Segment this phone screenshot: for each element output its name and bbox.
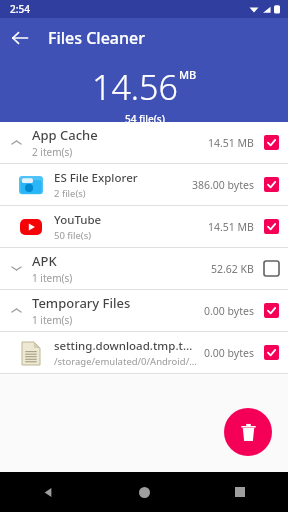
button[interactable]: APK	[0, 248, 288, 289]
staticText: YouTube	[54, 212, 102, 228]
button[interactable]: ES File Explorer	[0, 164, 288, 205]
staticText: MB	[179, 67, 197, 82]
staticText: 14.51 MB	[208, 136, 254, 150]
staticText: Temporary Files	[32, 294, 131, 312]
button[interactable]: Back	[0, 472, 96, 512]
button[interactable]: Back	[0, 18, 40, 58]
staticText: APK	[32, 252, 57, 270]
staticText: 14.51 MB	[208, 220, 254, 234]
button[interactable]: Temporary Files	[0, 290, 288, 331]
staticText: /storage/emulated/0/Android/d…	[54, 355, 200, 368]
button[interactable]: Checked	[254, 122, 288, 163]
staticText: setting.download.tmp.tmp	[54, 338, 200, 354]
staticText: 2 item(s)	[32, 145, 73, 159]
staticText: 14.56	[92, 64, 178, 110]
staticText: 0.00 bytes	[204, 346, 254, 360]
staticText: Files Cleaner	[48, 27, 146, 49]
staticText: 386.00 bytes	[192, 178, 254, 192]
button[interactable]: YouTube	[0, 206, 288, 247]
button[interactable]: Checked	[254, 164, 288, 205]
staticText: 52.62 KB	[211, 262, 254, 276]
button[interactable]: Unchecked	[254, 248, 288, 289]
button[interactable]: Recents	[192, 472, 288, 512]
staticText: ES File Explorer	[54, 170, 138, 186]
button[interactable]: setting.download.tmp.tmp	[0, 332, 288, 373]
staticText: 1 item(s)	[32, 271, 73, 285]
button[interactable]: Checked	[254, 206, 288, 247]
staticText: 2:54	[10, 2, 30, 16]
staticText: App Cache	[32, 126, 98, 144]
button[interactable]: Checked	[254, 290, 288, 331]
staticText: 1 item(s)	[32, 313, 73, 327]
staticText: 50 file(s)	[54, 229, 92, 242]
staticText: 2 file(s)	[54, 187, 86, 200]
button[interactable]: Home	[96, 472, 192, 512]
button[interactable]: Checked	[254, 332, 288, 373]
staticText: 54 file(s)	[125, 112, 165, 122]
staticText: 0.00 bytes	[204, 304, 254, 318]
button[interactable]: App Cache	[0, 122, 288, 163]
button[interactable]: Delete	[224, 408, 272, 456]
